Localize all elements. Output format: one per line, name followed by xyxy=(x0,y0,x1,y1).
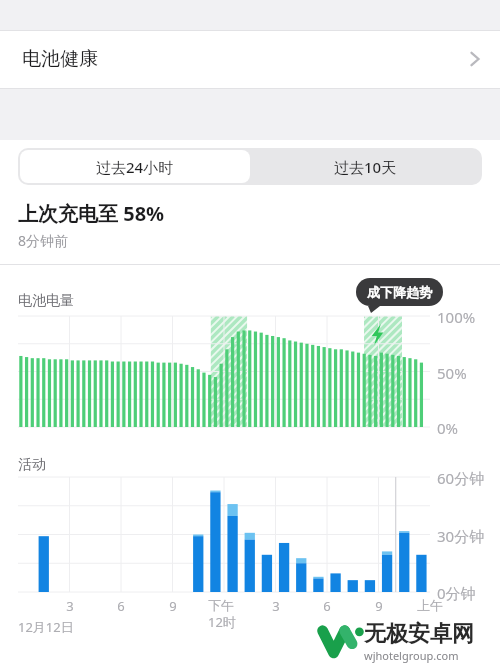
staticText: 50% xyxy=(437,363,467,383)
staticText: 无极安卓网 xyxy=(364,620,474,648)
staticText: 3 xyxy=(56,597,84,615)
staticText: 12月12日 xyxy=(18,618,74,636)
staticText: 过去10天 xyxy=(334,157,397,177)
staticText: wjhotelgroup.com xyxy=(364,648,459,663)
staticText: 活动 xyxy=(18,456,46,474)
staticText: 3 xyxy=(262,597,290,615)
button[interactable]: 过去10天 xyxy=(250,150,480,183)
staticText: 100% xyxy=(437,307,476,327)
button[interactable]: 过去24小时 xyxy=(20,150,250,183)
staticText: 上午 xyxy=(416,597,444,613)
staticText: 6 xyxy=(107,597,135,615)
staticText: 9 xyxy=(159,597,187,615)
staticText: 60分钟 xyxy=(437,468,485,488)
staticText: 电池健康 xyxy=(22,47,98,71)
staticText: 过去24小时 xyxy=(96,157,174,177)
staticText: 9 xyxy=(365,597,393,615)
staticText: 下午 xyxy=(208,597,234,613)
staticText: 30分钟 xyxy=(437,526,485,546)
staticText: 0分钟 xyxy=(437,583,476,603)
staticText: 6 xyxy=(313,597,341,615)
staticText: 12时 xyxy=(208,613,236,631)
button[interactable]: 电池健康 xyxy=(0,30,500,88)
staticText: 上次充电至 58% xyxy=(18,200,165,227)
staticText: 电池电量 xyxy=(18,292,74,310)
other: 电池健康 xyxy=(468,48,482,70)
staticText: 8分钟前 xyxy=(18,231,69,250)
button[interactable]: 成下降趋势 xyxy=(356,278,443,306)
staticText: 成下降趋势 xyxy=(367,284,432,300)
staticText: 0% xyxy=(437,418,459,438)
